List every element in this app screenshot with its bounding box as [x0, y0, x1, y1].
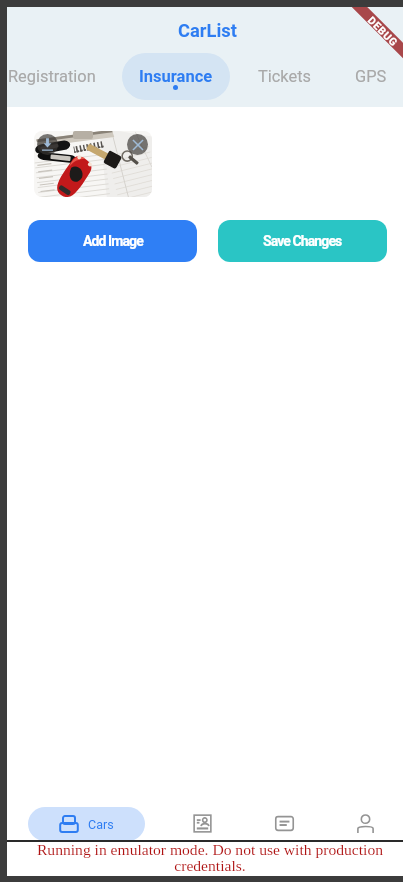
button[interactable]: Cars: [28, 807, 145, 841]
button[interactable]: Remove image: [127, 134, 148, 155]
button[interactable]: Tickets: [240, 48, 329, 107]
button[interactable]: Insurance: [112, 48, 239, 107]
button[interactable]: Save Changes: [218, 220, 387, 262]
button[interactable]: Registration: [0, 48, 112, 107]
staticText: Save Changes: [263, 233, 342, 249]
button[interactable]: Profile: [322, 788, 403, 840]
button[interactable]: Download image: [37, 134, 58, 155]
button[interactable]: GPS: [328, 48, 403, 107]
staticText: Add Image: [83, 233, 143, 249]
button[interactable]: Registration cards: [160, 788, 241, 840]
staticText: Tickets: [258, 67, 312, 86]
button[interactable]: Tickets: [241, 788, 322, 840]
staticText: GPS: [355, 67, 387, 86]
staticText: DEBUG: [366, 14, 400, 48]
button[interactable]: Add Image: [28, 220, 197, 262]
staticText: Running in emulator mode. Do not use wit…: [35, 841, 385, 874]
staticText: Insurance: [139, 67, 213, 86]
staticText: Cars: [88, 817, 114, 832]
staticText: CarList: [178, 20, 237, 41]
staticText: Registration: [8, 67, 96, 86]
